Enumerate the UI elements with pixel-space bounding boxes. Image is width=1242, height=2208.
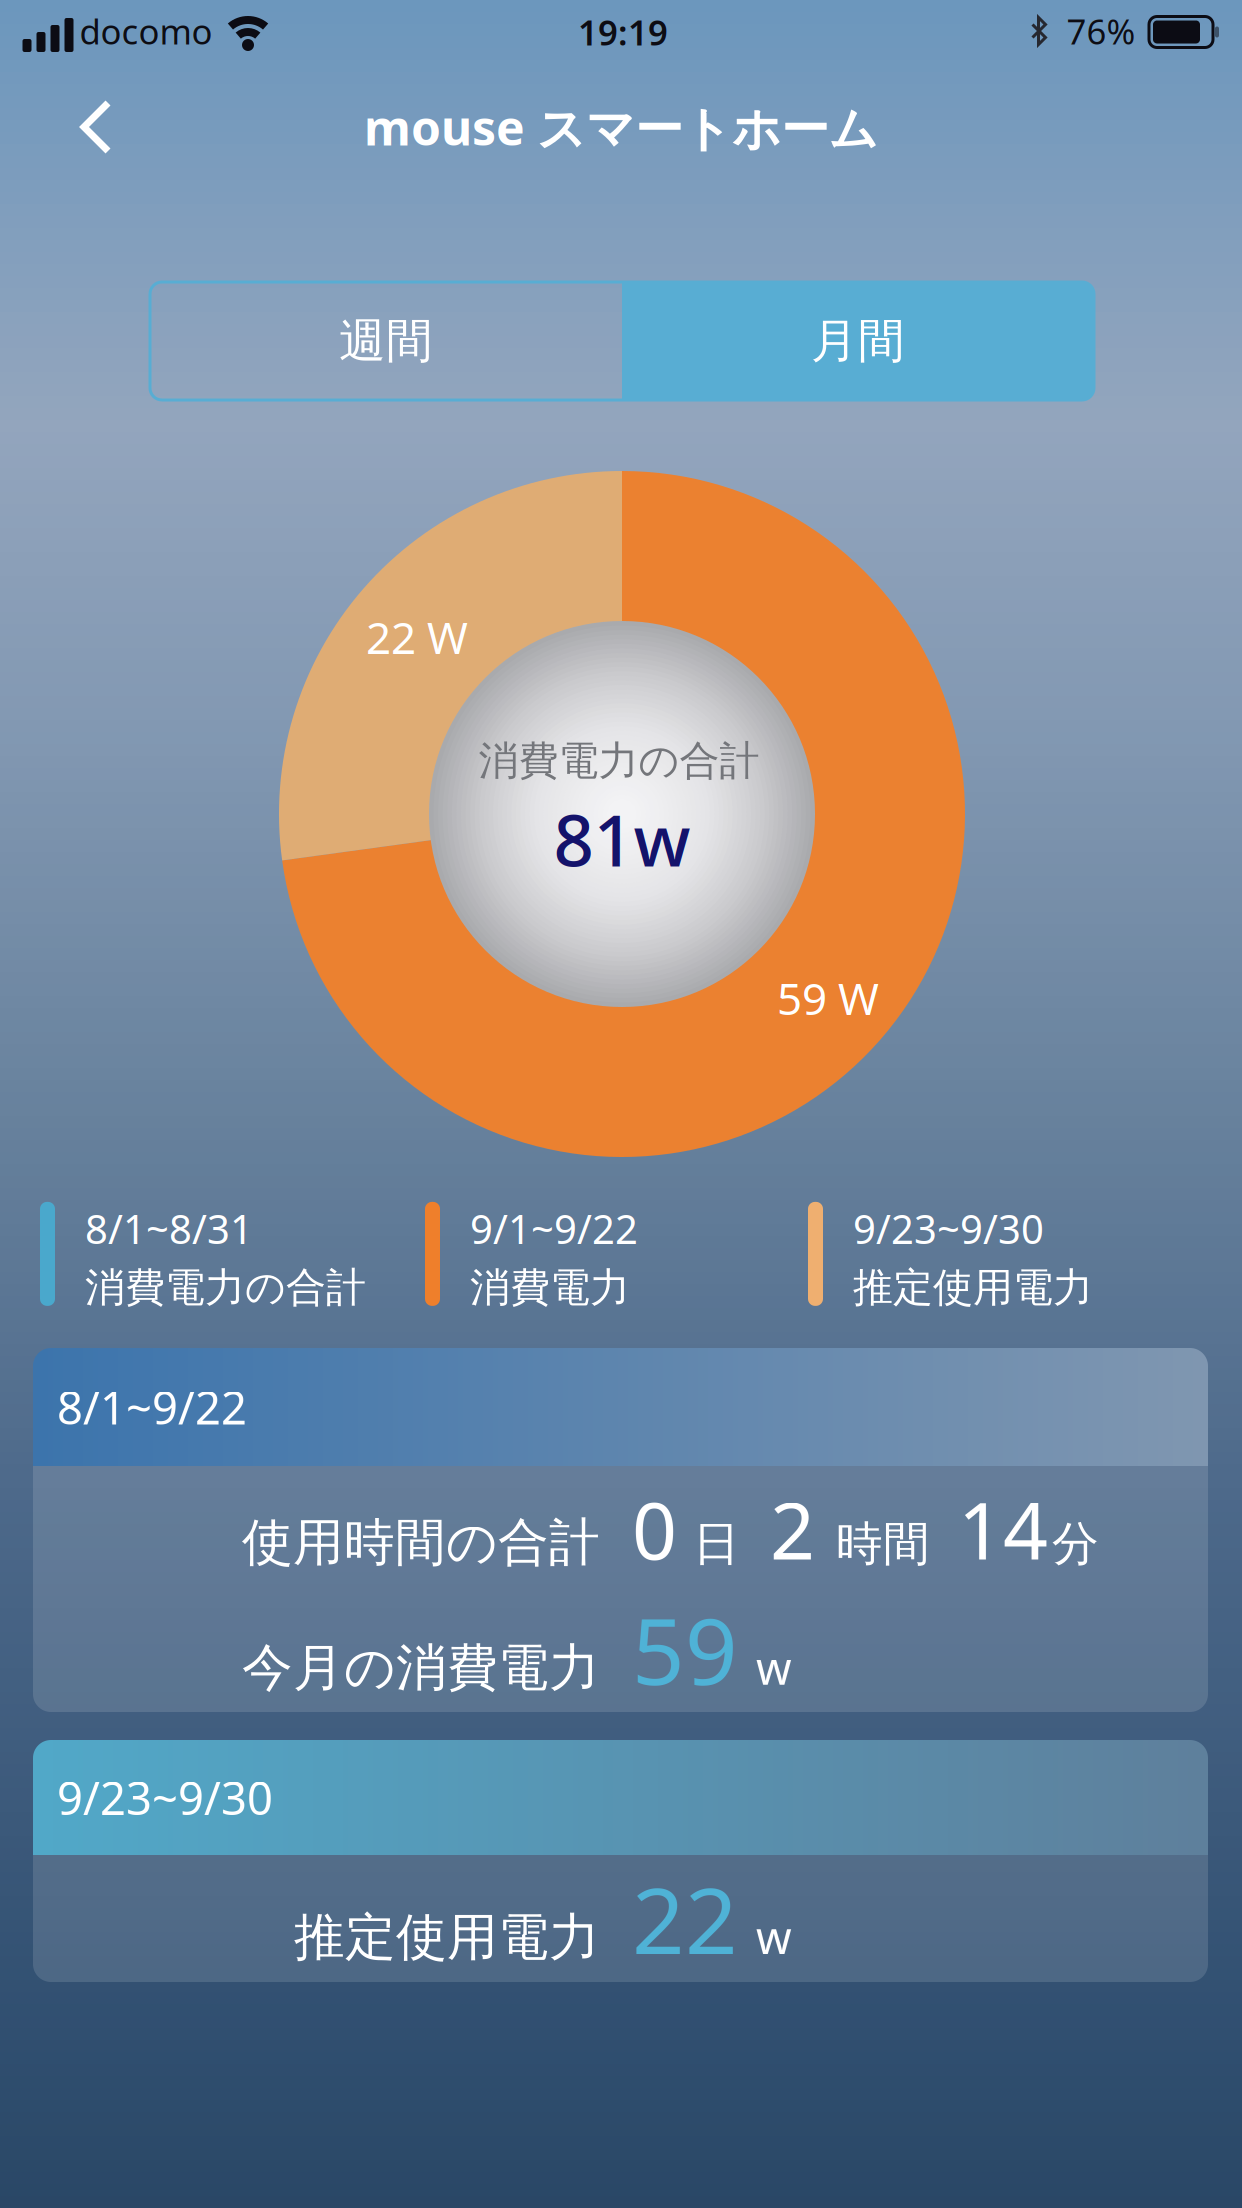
staticText: 19:19 — [578, 9, 668, 55]
staticText: 8/1~8/31 — [85, 1202, 253, 1255]
staticText: 81w — [553, 792, 690, 886]
staticText: 分 — [1052, 1515, 1099, 1573]
staticText: 59 — [632, 1588, 738, 1710]
staticText: 時間 — [836, 1515, 930, 1573]
staticText: 使用時間の合計 — [242, 1511, 600, 1574]
staticText: 推定使用電力 — [853, 1263, 1093, 1312]
staticText: 月間 — [811, 312, 905, 370]
staticText: 今月の消費電力 — [242, 1637, 600, 1699]
staticText: mouse スマートホーム — [364, 95, 878, 159]
staticText: 8/1~9/22 — [57, 1377, 247, 1437]
staticText: 59 W — [777, 969, 879, 1027]
staticText: 9/1~9/22 — [470, 1202, 638, 1255]
staticText: docomo — [79, 8, 212, 54]
staticText: 14 — [958, 1477, 1048, 1581]
staticText: 76% — [1066, 8, 1135, 54]
staticText: 9/23~9/30 — [853, 1202, 1044, 1255]
staticText: w — [756, 1637, 792, 1697]
staticText: 消費電力 — [470, 1263, 630, 1312]
staticText: 週間 — [339, 312, 433, 370]
staticText: 2 — [770, 1477, 815, 1581]
button[interactable]: 週間 — [150, 282, 622, 400]
staticText: 22 W — [366, 608, 468, 666]
staticText: 消費電力の合計 — [85, 1263, 366, 1312]
button[interactable]: 月間 — [622, 282, 1094, 400]
staticText: 22 — [632, 1857, 738, 1980]
staticText: 9/23~9/30 — [57, 1767, 273, 1828]
button[interactable]: Back — [65, 85, 129, 169]
staticText: 日 — [693, 1515, 740, 1573]
staticText: 0 — [632, 1477, 677, 1581]
staticText: 推定使用電力 — [294, 1906, 600, 1968]
staticText: w — [756, 1906, 792, 1967]
staticText: 消費電力の合計 — [478, 736, 759, 785]
